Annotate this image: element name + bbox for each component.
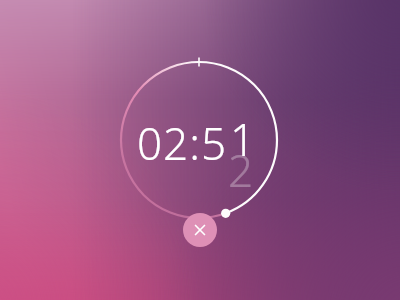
staticText: 02:5 xyxy=(137,113,228,173)
staticText: 1 xyxy=(230,109,256,169)
staticText: 2 xyxy=(228,140,254,200)
button[interactable]: Cancel timer xyxy=(183,213,217,247)
